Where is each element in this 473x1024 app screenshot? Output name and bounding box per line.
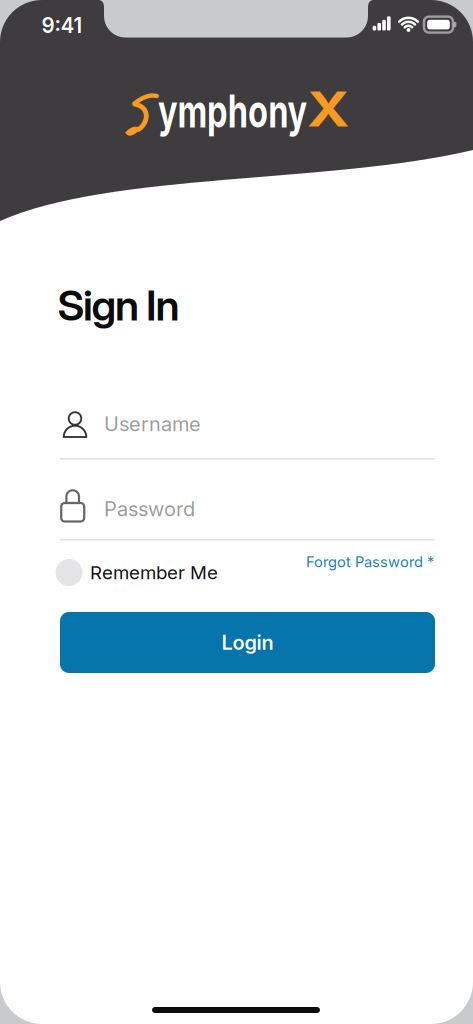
- staticText: Username: [104, 412, 201, 436]
- button[interactable]: Username: [60, 402, 435, 460]
- staticText: Password: [104, 497, 195, 521]
- button[interactable]: Password: [60, 487, 435, 541]
- staticText: Sign In: [57, 280, 179, 331]
- button[interactable]: Remember Me: [55, 557, 265, 588]
- staticText: Forgot Password *: [306, 553, 434, 571]
- staticText: Remember Me: [90, 561, 218, 584]
- staticText: Login: [221, 630, 273, 655]
- button[interactable]: Forgot Password *: [234, 549, 434, 575]
- staticText: X: [313, 80, 348, 138]
- staticText: ymphony: [158, 84, 365, 138]
- button[interactable]: Login: [60, 612, 435, 673]
- staticText: 9:41: [41, 13, 82, 38]
